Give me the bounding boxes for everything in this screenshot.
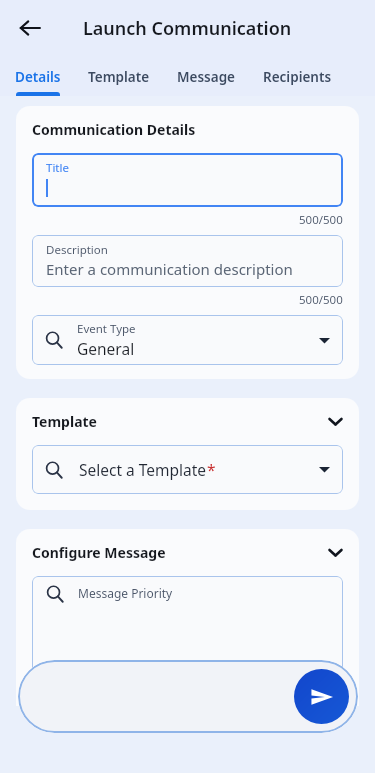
staticText: Winter Weather Advisory Remote — [46, 661, 288, 682]
staticText: 500/500 — [299, 212, 343, 228]
staticText: Message — [177, 68, 235, 86]
staticText: Configure Message — [32, 543, 328, 562]
staticText: Template — [88, 68, 150, 86]
button[interactable]: Details — [0, 56, 75, 96]
button[interactable]: Select a Template — [32, 445, 343, 494]
staticText: Template — [32, 412, 328, 431]
staticText: * — [207, 459, 216, 480]
button[interactable]: Send — [294, 669, 349, 724]
button[interactable]: Event Type — [32, 315, 343, 365]
button[interactable]: Template — [32, 412, 343, 431]
button[interactable]: Recipients — [250, 56, 345, 96]
button[interactable]: Configure Message — [32, 543, 343, 562]
staticText: General — [77, 338, 135, 359]
staticText: Event Type — [77, 321, 136, 337]
staticText: Recipients — [263, 68, 332, 86]
button[interactable]: Back — [8, 6, 52, 50]
staticText: Message Priority — [78, 585, 173, 601]
button[interactable]: Message Priority — [32, 576, 343, 706]
staticText: Title — [46, 160, 69, 176]
staticText: Description — [46, 242, 108, 258]
button[interactable]: Template — [75, 56, 162, 96]
staticText: Launch Communication — [83, 16, 292, 41]
staticText: Details — [15, 68, 61, 86]
button[interactable]: Description — [32, 235, 343, 287]
staticText: Communication Details — [32, 120, 196, 139]
button[interactable]: Message — [162, 56, 250, 96]
staticText: 500/500 — [299, 292, 343, 308]
staticText: Enter a communication description — [46, 259, 293, 279]
button[interactable]: Title — [32, 153, 343, 207]
staticText: Select a Template — [79, 459, 207, 480]
button[interactable]: Send — [18, 660, 358, 733]
